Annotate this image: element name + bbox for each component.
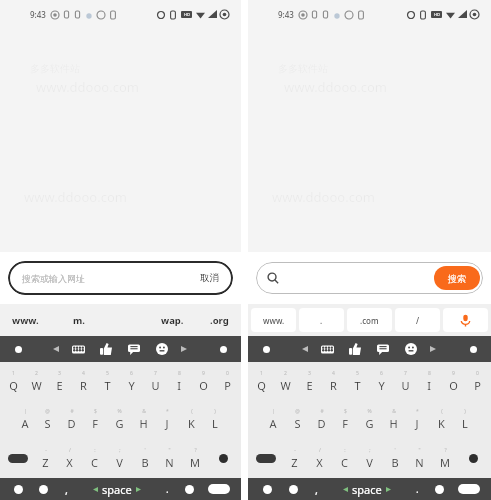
- button[interactable]: Like: [346, 340, 364, 358]
- button[interactable]: :: [82, 439, 107, 478]
- button[interactable]: Messages: [125, 340, 143, 358]
- button[interactable]: Backspace: [457, 439, 489, 478]
- button[interactable]: www.: [10, 310, 41, 331]
- button[interactable]: 1: [250, 362, 273, 400]
- button[interactable]: Next: [426, 342, 440, 356]
- button[interactable]: Keyboard: [318, 340, 336, 358]
- button[interactable]: Previous: [49, 342, 63, 356]
- button[interactable]: wap.: [159, 310, 186, 331]
- button[interactable]: ": [407, 439, 432, 478]
- button[interactable]: |: [13, 400, 36, 439]
- button[interactable]: 7: [143, 362, 167, 400]
- button[interactable]: 8: [417, 362, 441, 400]
- button[interactable]: (: [429, 400, 453, 439]
- button[interactable]: @: [285, 400, 309, 439]
- button[interactable]: ,: [306, 478, 326, 500]
- button[interactable]: $: [83, 400, 107, 439]
- button[interactable]: space: [326, 478, 407, 500]
- button[interactable]: 4: [71, 362, 95, 400]
- button[interactable]: Settings: [215, 341, 231, 357]
- button[interactable]: #: [59, 400, 83, 439]
- button[interactable]: Settings: [465, 341, 481, 357]
- button[interactable]: 9: [441, 362, 465, 400]
- button[interactable]: Menu: [258, 341, 274, 357]
- staticText: www.: [12, 314, 39, 327]
- button[interactable]: Enter: [452, 478, 485, 500]
- button[interactable]: 6: [369, 362, 393, 400]
- button[interactable]: /: [307, 439, 332, 478]
- button[interactable]: -: [282, 439, 307, 478]
- button[interactable]: 9: [191, 362, 215, 400]
- button[interactable]: m.: [71, 310, 87, 331]
- button[interactable]: *: [405, 400, 429, 439]
- button[interactable]: Language: [280, 478, 306, 500]
- button[interactable]: 3: [297, 362, 321, 400]
- button[interactable]: ": [157, 439, 182, 478]
- button[interactable]: 搜索: [256, 262, 483, 294]
- button[interactable]: Messages: [374, 340, 392, 358]
- button[interactable]: Shift: [250, 439, 282, 478]
- button[interactable]: /: [395, 308, 440, 332]
- button[interactable]: %: [357, 400, 381, 439]
- button[interactable]: 搜索或输入网址: [8, 261, 233, 295]
- button[interactable]: &: [381, 400, 405, 439]
- button[interactable]: Backspace: [207, 439, 239, 478]
- button[interactable]: ?: [182, 439, 207, 478]
- button[interactable]: $: [333, 400, 357, 439]
- button[interactable]: Keyboard: [69, 340, 87, 358]
- button[interactable]: ,: [56, 478, 76, 500]
- button[interactable]: Emoji key: [427, 478, 452, 500]
- button[interactable]: 5: [345, 362, 369, 400]
- button[interactable]: Enter: [202, 478, 235, 500]
- button[interactable]: 4: [321, 362, 345, 400]
- button[interactable]: ): [453, 400, 477, 439]
- button[interactable]: .com: [347, 308, 392, 332]
- button[interactable]: .org: [208, 310, 231, 331]
- button[interactable]: .: [299, 308, 344, 332]
- button[interactable]: Like: [97, 340, 115, 358]
- button[interactable]: 搜索: [434, 266, 480, 290]
- button[interactable]: 1: [2, 362, 25, 400]
- button[interactable]: Language: [31, 478, 56, 500]
- button[interactable]: 6: [119, 362, 143, 400]
- button[interactable]: 5: [95, 362, 119, 400]
- button[interactable]: Emoji key: [177, 478, 202, 500]
- button[interactable]: ;: [357, 439, 382, 478]
- button[interactable]: 2: [273, 362, 297, 400]
- button[interactable]: @: [36, 400, 59, 439]
- button[interactable]: Emoji: [402, 340, 420, 358]
- button[interactable]: Menu: [10, 341, 26, 357]
- button[interactable]: 2: [25, 362, 48, 400]
- button[interactable]: :: [332, 439, 357, 478]
- button[interactable]: |: [261, 400, 285, 439]
- button[interactable]: Previous: [298, 342, 312, 356]
- button[interactable]: Next: [177, 342, 191, 356]
- button[interactable]: ': [132, 439, 157, 478]
- button[interactable]: %: [107, 400, 131, 439]
- button[interactable]: &: [131, 400, 155, 439]
- button[interactable]: 0: [465, 362, 489, 400]
- button[interactable]: 8: [167, 362, 191, 400]
- button[interactable]: Symbols: [6, 478, 31, 500]
- button[interactable]: ;: [107, 439, 132, 478]
- button[interactable]: #: [309, 400, 333, 439]
- button[interactable]: -: [33, 439, 57, 478]
- button[interactable]: 0: [215, 362, 239, 400]
- button[interactable]: space: [76, 478, 157, 500]
- button[interactable]: /: [57, 439, 82, 478]
- staticText: J: [415, 416, 419, 431]
- button[interactable]: Shift: [2, 439, 33, 478]
- button[interactable]: Symbols: [254, 478, 280, 500]
- button[interactable]: ): [203, 400, 227, 439]
- button[interactable]: www.: [251, 308, 296, 332]
- button[interactable]: (: [179, 400, 203, 439]
- button[interactable]: ': [382, 439, 407, 478]
- button[interactable]: .: [407, 478, 427, 500]
- button[interactable]: Emoji: [153, 340, 171, 358]
- button[interactable]: *: [155, 400, 179, 439]
- button[interactable]: ?: [432, 439, 457, 478]
- button[interactable]: .: [157, 478, 177, 500]
- button[interactable]: 3: [48, 362, 71, 400]
- button[interactable]: Voice search: [443, 308, 488, 332]
- button[interactable]: 7: [393, 362, 417, 400]
